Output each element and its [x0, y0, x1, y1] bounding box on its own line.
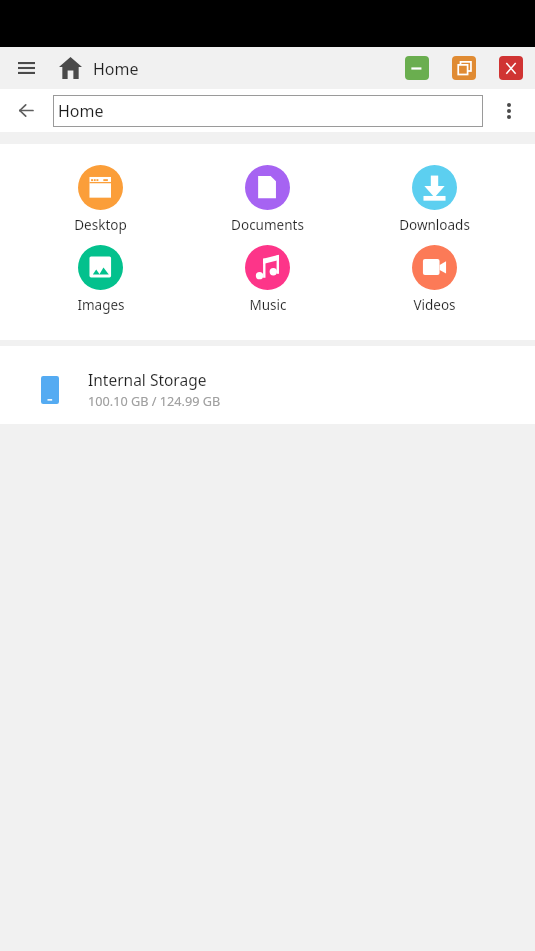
staticText: 100.10 GB / 124.99 GB — [88, 392, 221, 409]
button[interactable]: Desktop — [17, 165, 184, 234]
staticText: Downloads — [399, 216, 470, 234]
button[interactable]: Internal Storage — [0, 346, 535, 424]
staticText: Images — [77, 296, 125, 314]
staticText: Videos — [413, 296, 456, 314]
button[interactable]: Documents — [184, 165, 351, 234]
button[interactable]: Downloads — [351, 165, 518, 234]
staticText: Music — [249, 296, 287, 314]
button[interactable]: Home — [53, 95, 483, 127]
button[interactable]: More options — [483, 89, 535, 132]
staticText: Documents — [231, 216, 304, 234]
button[interactable]: Maximize — [452, 56, 476, 80]
button[interactable]: Images — [17, 245, 184, 314]
button[interactable]: Music — [184, 245, 351, 314]
button[interactable]: Minimize — [405, 56, 429, 80]
button[interactable]: Videos — [351, 245, 518, 314]
staticText: Internal Storage — [88, 369, 207, 390]
staticText: Home — [58, 100, 104, 122]
staticText: Home — [93, 58, 139, 80]
button[interactable]: Close — [499, 56, 523, 80]
staticText: Desktop — [74, 216, 127, 234]
button[interactable]: Navigation menu — [0, 47, 52, 89]
button[interactable]: Back — [0, 89, 51, 132]
